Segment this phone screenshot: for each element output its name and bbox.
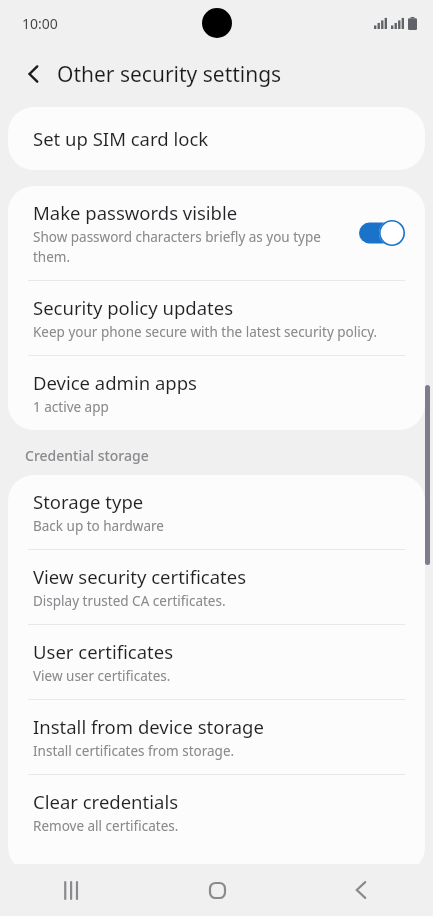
button[interactable]: Security policy updates [8, 281, 425, 355]
staticText: Device admin apps [33, 370, 197, 395]
staticText: Make passwords visible [33, 200, 238, 225]
staticText: Install from device storage [33, 714, 264, 739]
button[interactable]: Make passwords visible [8, 186, 425, 280]
button[interactable]: Recent apps [0, 864, 145, 916]
button[interactable]: Set up SIM card lock [8, 107, 425, 170]
staticText: Remove all certificates. [33, 817, 179, 835]
staticText: Install certificates from storage. [33, 742, 235, 760]
button[interactable]: Clear credentials [8, 775, 425, 849]
button[interactable]: Make passwords visible toggle [359, 220, 405, 246]
button[interactable]: User certificates [8, 625, 425, 699]
staticText: Set up SIM card lock [33, 126, 209, 151]
button[interactable]: View security certificates [8, 550, 425, 624]
staticText: View user certificates. [33, 667, 171, 685]
button[interactable]: Home [145, 864, 289, 916]
staticText: Clear credentials [33, 789, 179, 814]
staticText: Show password characters briefly as you … [33, 228, 349, 266]
button[interactable]: Back [289, 864, 433, 916]
button[interactable]: Storage type [8, 475, 425, 549]
staticText: View security certificates [33, 564, 247, 589]
button[interactable]: Device admin apps [8, 356, 425, 430]
staticText: Other security settings [57, 60, 282, 89]
staticText: Back up to hardware [33, 517, 164, 535]
staticText: 10:00 [22, 14, 58, 33]
staticText: 1 active app [33, 398, 109, 416]
button[interactable]: Back [14, 54, 54, 94]
staticText: Keep your phone secure with the latest s… [33, 323, 378, 341]
staticText: Storage type [33, 489, 144, 514]
staticText: User certificates [33, 639, 174, 664]
staticText: Credential storage [25, 446, 149, 465]
button[interactable]: Install from device storage [8, 700, 425, 774]
staticText: Display trusted CA certificates. [33, 592, 226, 610]
staticText: Security policy updates [33, 295, 234, 320]
